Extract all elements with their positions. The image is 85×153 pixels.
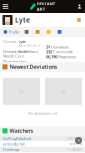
staticText: IceProgFabulouS bbox=[3, 136, 31, 141]
button[interactable]: Journal bbox=[43, 27, 54, 36]
button[interactable]: Freelinqa bbox=[0, 147, 85, 152]
staticText: ✕ bbox=[77, 138, 80, 143]
staticText: Deviant bbox=[3, 39, 16, 44]
staticText: Newest Deviations bbox=[9, 63, 57, 70]
button[interactable]: Account bbox=[74, 0, 85, 13]
button[interactable]: IceProgFabulouS bbox=[0, 136, 85, 141]
staticText: 3 days ago bbox=[68, 148, 82, 151]
staticText: Pageviews bbox=[58, 54, 76, 59]
staticText: Comments bbox=[53, 49, 73, 54]
staticText: Profile bbox=[9, 29, 20, 34]
staticText: Lyte bbox=[18, 39, 25, 44]
button[interactable]: Favourites bbox=[32, 27, 43, 36]
button[interactable]: Notes bbox=[54, 27, 65, 36]
staticText: Watchers bbox=[9, 127, 33, 134]
button[interactable]: Profile bbox=[2, 27, 21, 36]
staticText: Freelinqa bbox=[3, 147, 19, 152]
staticText: 31 bbox=[46, 44, 50, 50]
staticText: artist-dkz-hd bbox=[3, 141, 24, 147]
staticText: Deviant for 13 Years bbox=[3, 49, 38, 54]
button[interactable]: Avatar bbox=[2, 15, 12, 25]
staticText: 66,196 bbox=[46, 54, 57, 59]
staticText: ART bbox=[37, 6, 45, 12]
button[interactable]: Menu bbox=[0, 0, 11, 13]
button[interactable]: Gallery bbox=[21, 27, 32, 36]
staticText: Needs Core Membership bbox=[3, 53, 26, 64]
button[interactable]: Close bbox=[75, 137, 82, 144]
staticText: 232 bbox=[46, 49, 52, 54]
staticText: a few hours bbox=[67, 137, 82, 140]
staticText: Lyte bbox=[15, 16, 30, 24]
staticText: Deviations bbox=[51, 44, 69, 50]
staticText: Male/United States bbox=[18, 43, 39, 54]
staticText: yesterday bbox=[70, 142, 82, 146]
button[interactable]: Badge bbox=[75, 16, 82, 23]
staticText: DEVIANT bbox=[37, 1, 55, 6]
staticText: No deviations yet bbox=[28, 111, 57, 116]
button[interactable]: artist-dkz-hd bbox=[0, 141, 85, 147]
